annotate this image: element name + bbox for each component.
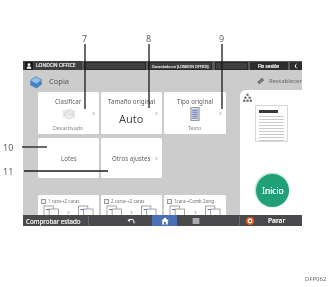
staticText: Desactivado xyxy=(53,124,84,131)
staticText: 1cara→Comb 2orig xyxy=(174,198,215,204)
button[interactable]: Restablecer xyxy=(256,75,302,86)
staticText: Fin sesión xyxy=(258,63,280,69)
button[interactable]: Home xyxy=(152,215,177,226)
staticText: Copia xyxy=(49,76,70,86)
button[interactable]: Menu xyxy=(184,215,208,226)
staticText: LONDON OFFICE xyxy=(36,62,76,69)
staticText: 10 xyxy=(3,141,14,153)
staticText: 2 caras→2 caras xyxy=(111,198,145,204)
button[interactable]: Clasificar xyxy=(38,92,99,134)
staticText: Comprobar estado xyxy=(26,217,81,225)
staticText: Parar xyxy=(268,216,286,225)
button[interactable]: LONDON OFFICE xyxy=(23,61,82,70)
button[interactable]: Fin sesión xyxy=(250,62,288,70)
staticText: Clasificar xyxy=(55,97,82,105)
staticText: Lotes xyxy=(61,154,77,162)
staticText: 8 xyxy=(146,32,152,44)
staticText: 1 cara→2 caras xyxy=(48,198,80,204)
button[interactable]: 1 cara→2 caras xyxy=(38,195,99,225)
staticText: Auto xyxy=(119,111,144,126)
button[interactable]: Inicio xyxy=(256,174,289,207)
staticText: 11 xyxy=(3,165,14,177)
button[interactable]: 2 caras→2 caras xyxy=(101,195,162,225)
staticText: Texto xyxy=(188,124,202,131)
staticText: Conectado en [LONDON OFFICE] xyxy=(152,64,209,69)
staticText: Tipo original xyxy=(177,97,214,105)
button[interactable]: Lotes xyxy=(38,138,99,178)
staticText: 9 xyxy=(219,32,225,44)
staticText: DFP062 xyxy=(305,275,327,283)
staticText: Restablecer xyxy=(269,77,302,85)
button[interactable]: Sleep mode xyxy=(290,62,302,70)
button[interactable]: Comprobar estado xyxy=(23,215,88,226)
staticText: Inicio xyxy=(262,185,284,197)
staticText: Otros ajustes xyxy=(112,154,151,162)
button[interactable]: Parar xyxy=(240,215,302,226)
staticText: 7 xyxy=(82,32,88,44)
staticText: Tamaño original xyxy=(108,97,156,105)
button[interactable]: Tipo original xyxy=(164,92,226,134)
button[interactable]: Otros ajustes xyxy=(101,138,162,178)
button[interactable]: 1cara→Comb 2orig xyxy=(164,195,226,225)
button[interactable]: Back xyxy=(119,215,143,226)
button[interactable]: Tamaño original xyxy=(101,92,162,134)
